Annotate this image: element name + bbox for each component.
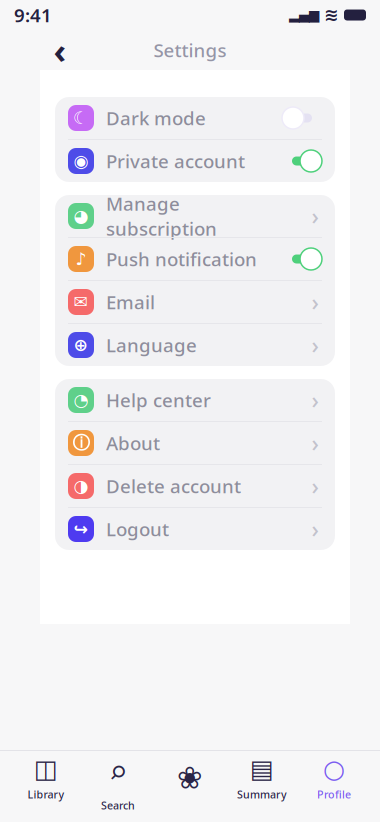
staticText: ♪ [75, 249, 86, 269]
button[interactable]: ◕ [55, 195, 335, 237]
staticText: Delete account [106, 474, 241, 498]
button[interactable]: Search [82, 755, 154, 801]
staticText: ≋ [324, 5, 339, 25]
staticText: ⊕ [73, 335, 88, 355]
button[interactable]: ⓘ [55, 422, 335, 464]
staticText: › [311, 428, 318, 458]
staticText: › [311, 201, 318, 231]
staticText: Profile [317, 787, 351, 801]
staticText: Private account [106, 149, 245, 173]
staticText: ◉ [73, 151, 88, 171]
staticText: ◫ [34, 754, 58, 783]
staticText: ↪ [73, 519, 88, 539]
staticText: Help center [106, 388, 211, 412]
staticText: ✉ [73, 292, 88, 312]
staticText: Manage subscription [106, 191, 217, 241]
button[interactable]: ↪ [55, 508, 335, 550]
staticText: Library [27, 787, 64, 801]
staticText: About [106, 431, 160, 455]
staticText: Language [106, 333, 197, 357]
staticText: ◔ [73, 390, 88, 410]
button[interactable]: ♪ [55, 238, 335, 280]
staticText: Search [101, 798, 135, 812]
staticText: › [311, 514, 318, 544]
button[interactable]: ⊕ [55, 324, 335, 366]
staticText: ❀ [177, 761, 203, 795]
staticText: Email [106, 290, 155, 314]
staticText: Settings [153, 38, 226, 62]
staticText: › [311, 330, 318, 360]
staticText: ▂▄▆ [289, 7, 319, 22]
staticText: Summary [237, 787, 287, 801]
staticText: ▤ [250, 754, 274, 783]
staticText: 9:41 [14, 3, 52, 27]
staticText: Dark mode [106, 106, 206, 130]
button[interactable]: Summary [226, 755, 298, 801]
staticText: ◕ [73, 206, 88, 226]
staticText: Logout [106, 517, 169, 541]
staticText: ⓘ [72, 432, 89, 454]
staticText: ◑ [73, 476, 88, 496]
staticText: ‹ [53, 27, 66, 73]
staticText: Push notification [106, 247, 257, 271]
staticText: ⌕ [110, 744, 126, 794]
button[interactable]: ◉ [55, 140, 335, 182]
staticText: › [311, 385, 318, 415]
button[interactable]: ◔ [55, 379, 335, 421]
staticText: ☾ [73, 108, 89, 128]
staticText: ○ [323, 754, 345, 783]
staticText: › [311, 471, 318, 501]
button[interactable]: Back [42, 32, 78, 68]
staticText: › [311, 287, 318, 317]
button[interactable]: Library [10, 755, 82, 801]
button[interactable]: Profile [298, 755, 370, 801]
button[interactable]: Assistant [154, 755, 226, 801]
button[interactable]: ◑ [55, 465, 335, 507]
button[interactable]: ☾ [55, 97, 335, 139]
button[interactable]: ✉ [55, 281, 335, 323]
